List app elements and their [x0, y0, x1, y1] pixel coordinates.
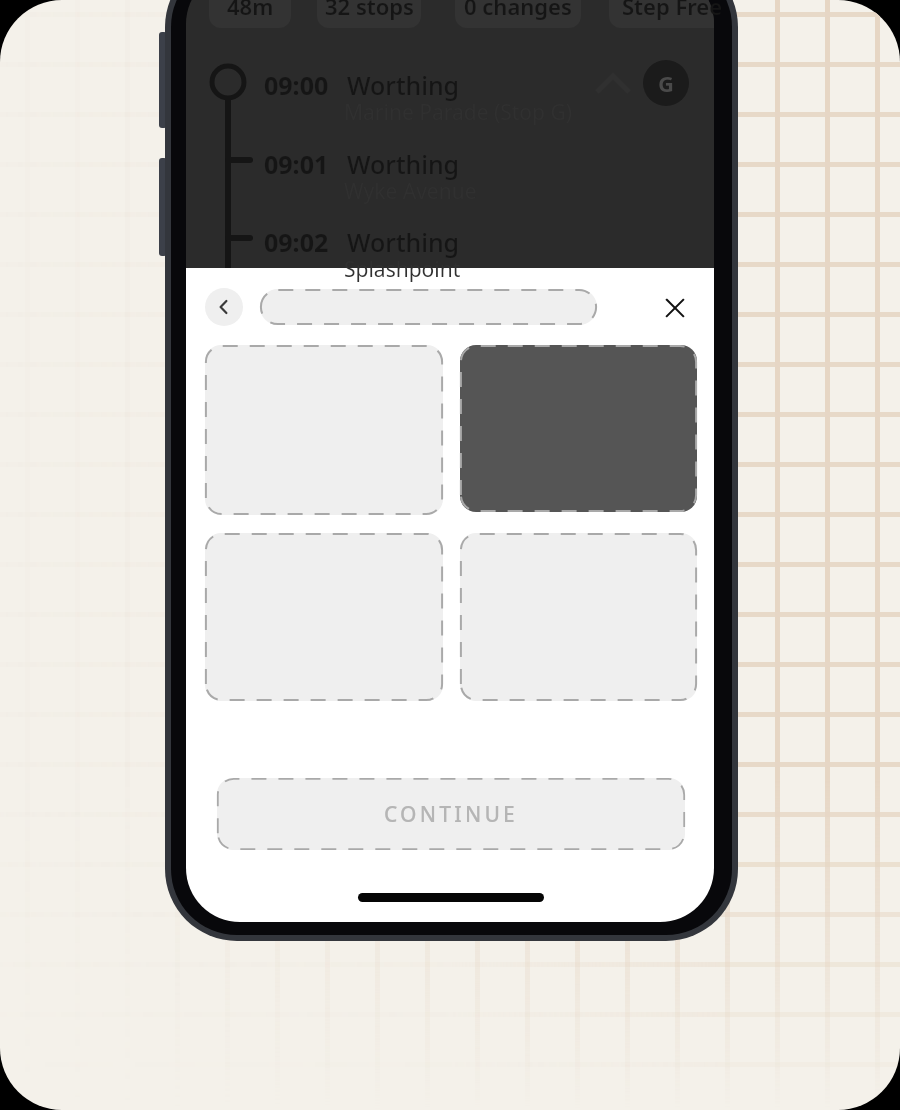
staticText: 09:02 [264, 225, 329, 259]
button[interactable] [260, 289, 597, 325]
staticText: 0 changes [464, 0, 572, 21]
button[interactable]: Back [205, 288, 243, 326]
staticText: 09:01 [264, 147, 329, 181]
staticText: 48m [227, 0, 274, 21]
staticText: Splashpoint [344, 255, 461, 284]
staticText: 09:00 [264, 68, 329, 102]
staticText: Step Free [622, 0, 723, 21]
staticText: Worthing [347, 225, 460, 259]
button[interactable] [460, 533, 697, 701]
button[interactable]: Close [655, 288, 695, 328]
staticText: CONTINUE [384, 800, 519, 829]
staticText: G [658, 68, 674, 98]
staticText: 32 stops [325, 0, 414, 21]
staticText: Worthing [347, 68, 460, 102]
button[interactable] [460, 345, 697, 512]
staticText: Worthing [347, 147, 460, 181]
button[interactable] [205, 533, 443, 701]
button[interactable] [205, 345, 443, 515]
button[interactable]: CONTINUE [217, 778, 685, 850]
